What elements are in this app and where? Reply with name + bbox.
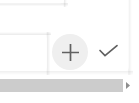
button[interactable]: Done <box>91 33 126 68</box>
button[interactable]: Add <box>52 34 88 70</box>
button[interactable]: Play <box>121 79 134 91</box>
